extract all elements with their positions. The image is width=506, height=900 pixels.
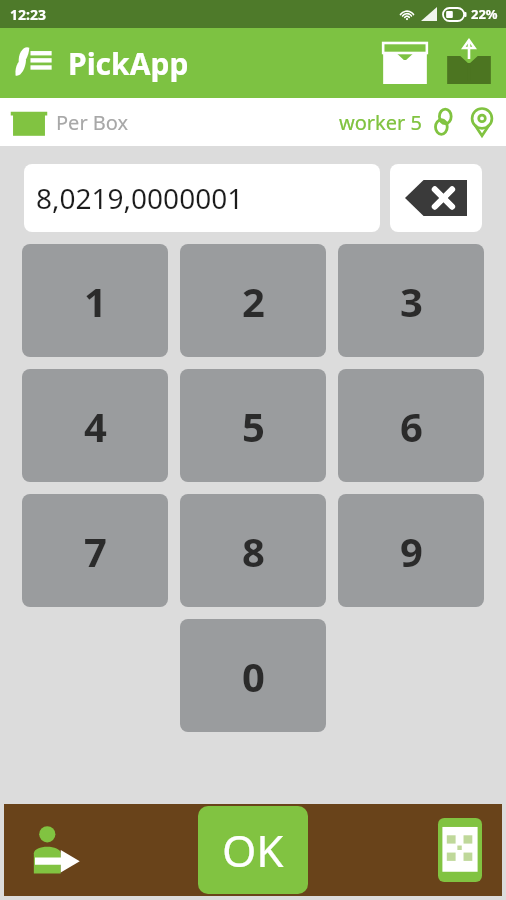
staticText: 2 [242,274,265,328]
staticText: 12:23 [10,5,46,24]
button[interactable]: 1 [22,244,168,357]
button[interactable]: Switch worker [22,818,86,882]
button[interactable]: 8,0219,0000001 [24,164,380,232]
button[interactable]: 6 [338,369,484,482]
button[interactable]: Outbox [438,34,500,92]
button[interactable]: 7 [22,494,168,607]
button[interactable]: Scan barcode [436,817,484,883]
staticText: 4 [84,399,107,453]
staticText: 8,0219,0000001 [36,179,244,217]
staticText: 1 [84,274,107,328]
button[interactable]: 3 [338,244,484,357]
staticText: OK [222,820,284,880]
staticText: 8 [242,524,265,578]
button[interactable]: 8 [180,494,326,607]
staticText: 0 [242,649,265,703]
button[interactable]: Menu [8,35,64,91]
button[interactable]: OK [198,806,308,894]
button[interactable]: 2 [180,244,326,357]
button[interactable]: Backspace [390,164,482,232]
button[interactable]: 0 [180,619,326,732]
staticText: PickApp [68,43,189,84]
staticText: Per Box [56,109,129,136]
staticText: worker 5 [339,109,422,136]
staticText: 3 [400,274,423,328]
button[interactable]: 5 [180,369,326,482]
button[interactable]: 4 [22,369,168,482]
staticText: 6 [400,399,423,453]
staticText: 9 [400,524,423,578]
button[interactable]: Inbox [374,34,436,92]
button[interactable]: Link [428,105,462,139]
button[interactable]: Location [464,104,500,140]
staticText: 7 [84,524,107,578]
button[interactable]: 9 [338,494,484,607]
staticText: 5 [242,399,265,453]
staticText: 22% [471,5,498,23]
